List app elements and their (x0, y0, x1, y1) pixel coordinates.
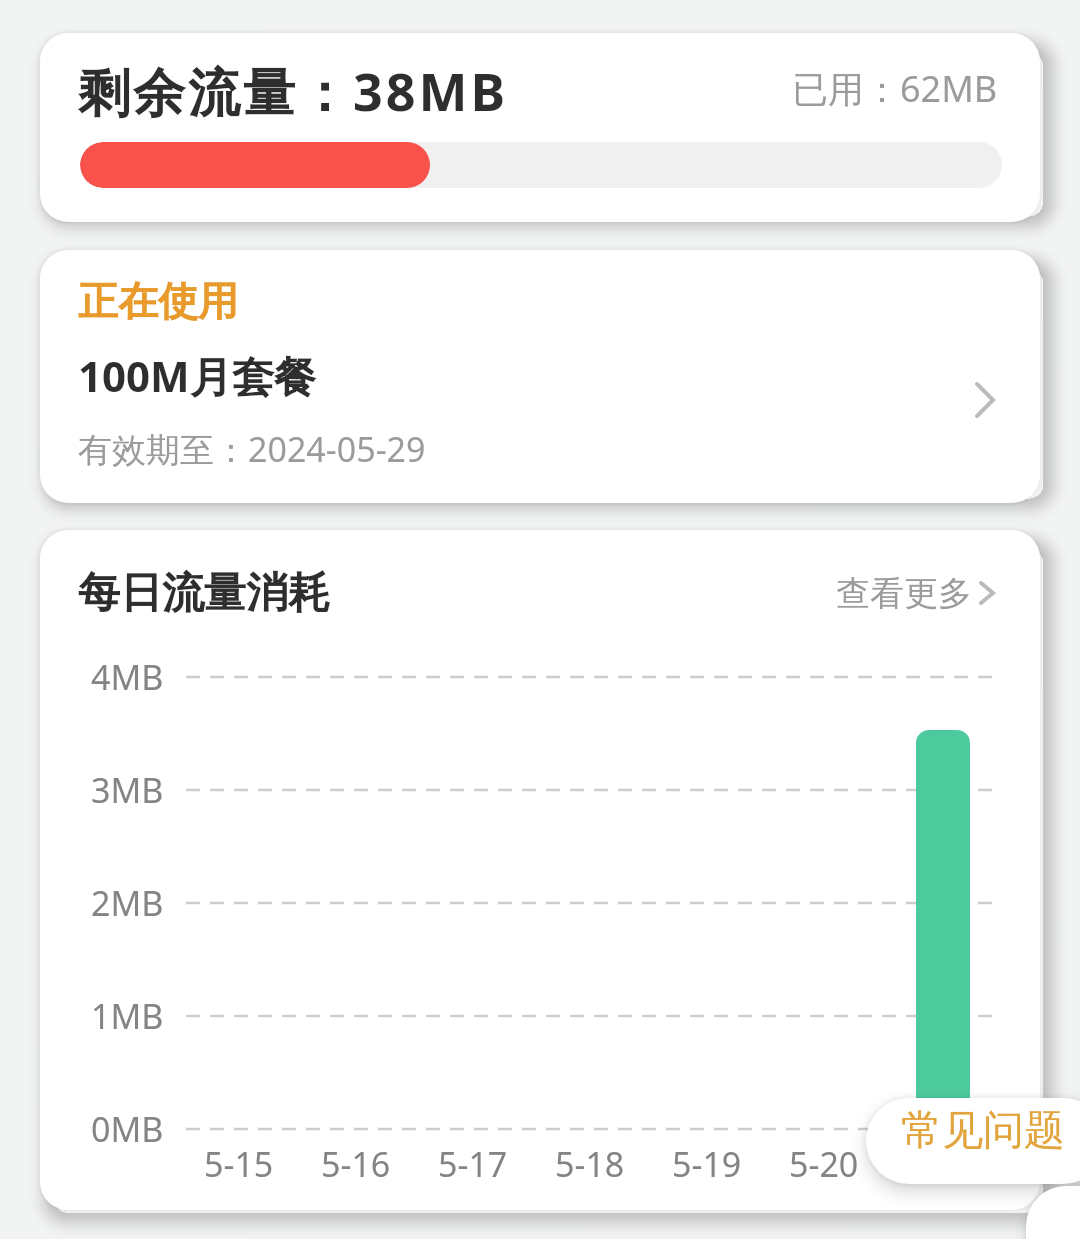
staticText: 5-17 (438, 1141, 508, 1181)
button[interactable]: 正在使用 (40, 250, 1040, 503)
staticText: 5-18 (555, 1141, 625, 1181)
staticText: 0MB (91, 1106, 164, 1152)
staticText: 2MB (91, 880, 164, 926)
staticText: 常见问题 (901, 1105, 1065, 1157)
staticText: 每日流量消耗 (78, 567, 330, 620)
staticText: 100M月套餐 (78, 347, 316, 404)
staticText: 1MB (91, 993, 164, 1039)
staticText: 5-15 (204, 1141, 274, 1181)
staticText: 有效期至：2024-05-29 (78, 426, 426, 472)
staticText: 查看更多 (836, 572, 972, 615)
button[interactable]: 查看更多 (40, 553, 1002, 633)
staticText: 5-20 (789, 1141, 859, 1181)
staticText: 5-19 (672, 1141, 742, 1181)
staticText: 5-16 (321, 1141, 391, 1181)
staticText: 4MB (91, 654, 164, 700)
staticText: 已用：62MB (792, 64, 998, 113)
staticText: 正在使用 (78, 276, 238, 326)
staticText: 剩余流量：38MB (78, 55, 509, 126)
staticText: 3MB (91, 767, 164, 813)
button[interactable]: 常见问题 (866, 1098, 1080, 1184)
